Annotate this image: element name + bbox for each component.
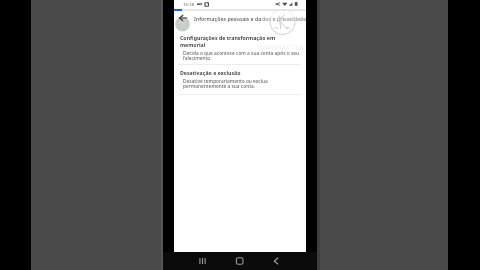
staticText: Desative temporariamente ou exclua perma…	[183, 78, 268, 90]
staticText: 16:18	[183, 1, 194, 7]
staticText: Informações pessoais e da	[194, 15, 262, 22]
button[interactable]: Back	[175, 10, 191, 26]
staticText: Desativação e exclusão	[180, 69, 241, 76]
staticText: Decida o que acontece com a sua conta ap…	[183, 50, 300, 62]
staticText: Configurações de transformação em memori…	[180, 34, 276, 48]
staticText: KINEMASTER	[258, 43, 305, 52]
staticText: dos e privacidade	[262, 15, 307, 22]
